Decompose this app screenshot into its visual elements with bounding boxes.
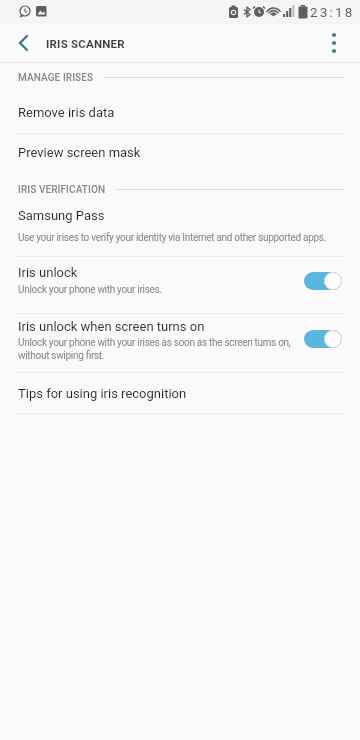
staticText: IRIS SCANNER <box>46 37 125 50</box>
button[interactable] <box>304 272 342 290</box>
staticText: Unlock your phone with your irises. <box>18 284 162 296</box>
staticText: MANAGE IRISES <box>18 72 94 84</box>
button[interactable]: Tips for using iris recognition <box>0 373 360 413</box>
button[interactable]: Iris unlock <box>0 257 360 313</box>
button[interactable] <box>8 28 38 58</box>
button[interactable] <box>304 330 342 348</box>
button[interactable]: Remove iris data <box>0 92 360 133</box>
staticText: IRIS VERIFICATION <box>18 184 106 196</box>
button[interactable] <box>318 30 344 56</box>
button[interactable]: Samsung Pass <box>0 204 360 256</box>
staticText: Use your irises to verify your identity … <box>18 232 327 244</box>
staticText: Unlock your phone with your irises as so… <box>18 337 303 361</box>
staticText: Tips for using iris recognition <box>18 386 187 401</box>
staticText: Preview screen mask <box>18 145 141 160</box>
staticText: 23:18 <box>310 4 355 20</box>
staticText: Samsung Pass <box>18 208 105 223</box>
staticText: Remove iris data <box>18 105 115 120</box>
button[interactable]: Preview screen mask <box>0 134 360 171</box>
staticText: Iris unlock when screen turns on <box>18 319 205 334</box>
button[interactable]: Iris unlock when screen turns on <box>0 314 360 372</box>
staticText: Iris unlock <box>18 265 78 280</box>
